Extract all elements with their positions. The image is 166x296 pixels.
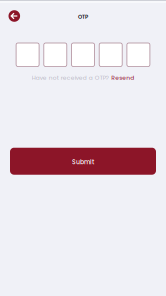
button[interactable]: Submit — [10, 148, 156, 175]
staticText: OTP — [78, 13, 88, 21]
staticText: Have not received a OTP? — [32, 73, 109, 82]
button[interactable]: Back — [8, 10, 20, 22]
button[interactable]: Resend — [111, 73, 134, 82]
staticText: Submit — [72, 158, 94, 166]
staticText: Resend — [111, 73, 134, 82]
